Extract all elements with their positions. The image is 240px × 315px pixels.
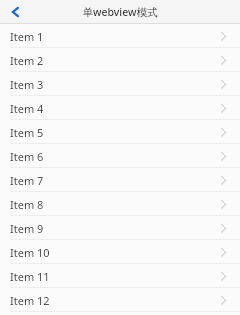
- button[interactable]: Item 5: [0, 120, 240, 144]
- button[interactable]: Item 12: [0, 288, 240, 312]
- button[interactable]: Item 11: [0, 264, 240, 288]
- button[interactable]: Back: [0, 0, 24, 24]
- staticText: Item 8: [10, 197, 44, 212]
- staticText: Item 1: [10, 29, 44, 44]
- button[interactable]: Item 4: [0, 96, 240, 120]
- button[interactable]: Item 7: [0, 168, 240, 192]
- button[interactable]: Item 6: [0, 144, 240, 168]
- staticText: Item 3: [10, 77, 44, 92]
- staticText: Item 5: [10, 125, 44, 140]
- button[interactable]: Item 10: [0, 240, 240, 264]
- staticText: 单webview模式: [0, 5, 240, 19]
- button[interactable]: Item 8: [0, 192, 240, 216]
- staticText: Item 6: [10, 149, 44, 164]
- button[interactable]: Item 3: [0, 72, 240, 96]
- button[interactable]: Item 1: [0, 24, 240, 48]
- staticText: Item 9: [10, 221, 44, 236]
- button[interactable]: Item 9: [0, 216, 240, 240]
- button[interactable]: Item 2: [0, 48, 240, 72]
- staticText: Item 4: [10, 101, 44, 116]
- staticText: Item 10: [10, 245, 50, 260]
- staticText: Item 7: [10, 173, 44, 188]
- staticText: Item 2: [10, 53, 44, 68]
- staticText: Item 11: [10, 269, 50, 284]
- staticText: Item 12: [10, 293, 50, 308]
